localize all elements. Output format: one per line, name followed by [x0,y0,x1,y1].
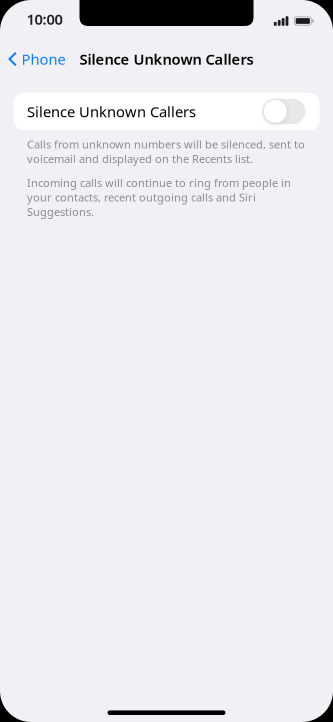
staticText: 10:00 [26,9,62,29]
staticText: Silence Unknown Callers [79,49,253,69]
staticText: Phone [22,49,66,69]
button[interactable]: Silence Unknown Callers [13,93,319,130]
button[interactable]: Phone [0,42,70,76]
staticText: Incoming calls will continue to ring fro… [27,175,291,219]
staticText: Calls from unknown numbers will be silen… [27,137,305,166]
staticText: Silence Unknown Callers [27,101,196,121]
